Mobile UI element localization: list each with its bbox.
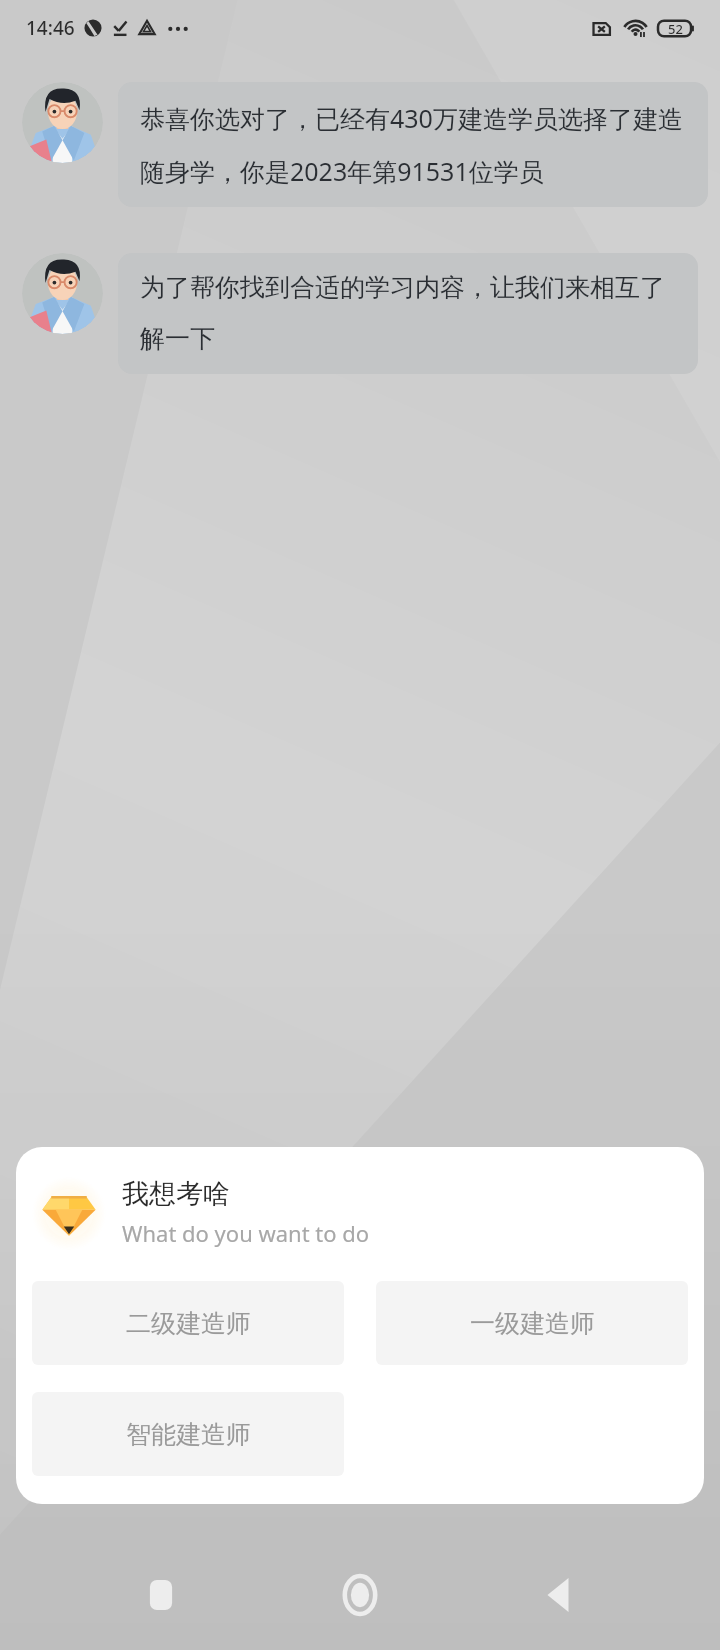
button[interactable]: 智能建造师 <box>32 1392 344 1476</box>
other: Teacher avatar <box>22 253 103 334</box>
button[interactable]: 二级建造师 <box>32 1281 344 1365</box>
staticText: 恭喜你选对了，已经有430万建造学员选择了建造随身学，你是2023年第91531… <box>140 101 686 188</box>
button[interactable]: Back <box>521 1557 597 1633</box>
staticText: 我想考啥 <box>122 1177 230 1211</box>
button[interactable]: 一级建造师 <box>376 1281 688 1365</box>
staticText: 二级建造师 <box>126 1308 251 1339</box>
button[interactable]: 为了帮你找到合适的学习内容，让我们来相互了解一下 <box>118 253 698 374</box>
staticText: 一级建造师 <box>470 1308 595 1339</box>
button[interactable]: 恭喜你选对了，已经有430万建造学员选择了建造随身学，你是2023年第91531… <box>118 82 708 207</box>
button[interactable]: Recent apps <box>123 1557 199 1633</box>
staticText: What do you want to do <box>122 1218 370 1248</box>
staticText: 14:46 <box>26 15 75 41</box>
staticText: 为了帮你找到合适的学习内容，让我们来相互了解一下 <box>140 272 676 355</box>
staticText: 智能建造师 <box>126 1419 251 1450</box>
other: Teacher avatar <box>22 82 103 163</box>
button[interactable]: Home <box>322 1557 398 1633</box>
staticText: 52 <box>668 20 683 38</box>
